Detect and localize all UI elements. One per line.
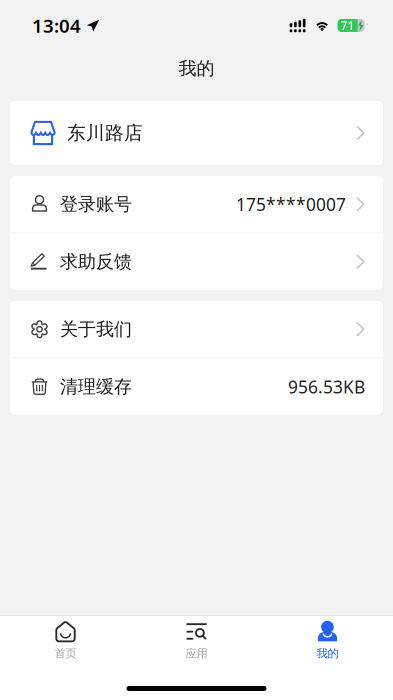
staticText: 首页 bbox=[54, 646, 76, 661]
staticText: 清理缓存 bbox=[60, 375, 132, 398]
button[interactable]: 清理缓存 bbox=[10, 358, 383, 415]
button[interactable]: 关于我们 bbox=[10, 301, 383, 357]
button[interactable]: 东川路店 bbox=[10, 101, 383, 165]
button[interactable]: 首页 bbox=[0, 616, 131, 665]
staticText: 东川路店 bbox=[67, 121, 143, 145]
staticText: 我的 bbox=[178, 57, 214, 80]
staticText: 应用 bbox=[185, 646, 207, 661]
button[interactable]: 我的 bbox=[262, 616, 393, 665]
staticText: 我的 bbox=[316, 646, 338, 661]
button[interactable]: 登录账号 bbox=[10, 176, 383, 232]
button[interactable]: 应用 bbox=[131, 616, 262, 665]
staticText: 956.53KB bbox=[288, 375, 365, 398]
staticText: 求助反馈 bbox=[60, 250, 132, 273]
staticText: 175****0007 bbox=[236, 192, 346, 216]
staticText: 关于我们 bbox=[60, 318, 132, 341]
staticText: 登录账号 bbox=[60, 193, 132, 216]
button[interactable]: 求助反馈 bbox=[10, 233, 383, 290]
staticText: 13:04 bbox=[32, 13, 81, 38]
staticText: 71 bbox=[341, 17, 355, 34]
